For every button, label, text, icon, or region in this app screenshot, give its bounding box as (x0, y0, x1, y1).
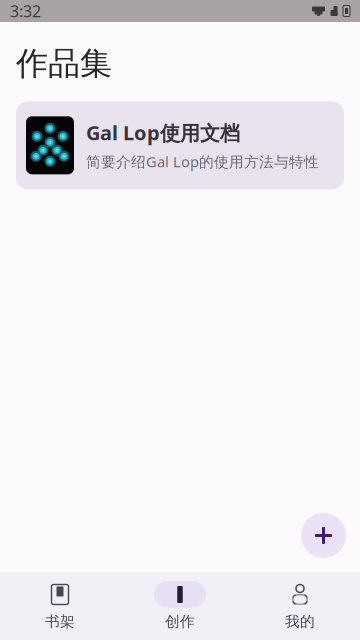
button[interactable]: 新建 (301, 513, 346, 558)
button[interactable]: Gal Lop使用文档 (16, 101, 344, 189)
button[interactable]: 书架 (0, 572, 120, 640)
staticText: Gal Lop使用文档 (86, 119, 240, 146)
button[interactable]: 我的 (240, 572, 360, 640)
button[interactable]: 创作 (120, 572, 240, 640)
staticText: 3:32 (10, 0, 41, 22)
staticText: 创作 (165, 612, 195, 630)
staticText: 简要介绍Gal Lop的使用方法与特性 (86, 152, 319, 171)
staticText: 我的 (285, 612, 315, 630)
staticText: 作品集 (16, 44, 112, 83)
staticText: 书架 (45, 612, 75, 630)
